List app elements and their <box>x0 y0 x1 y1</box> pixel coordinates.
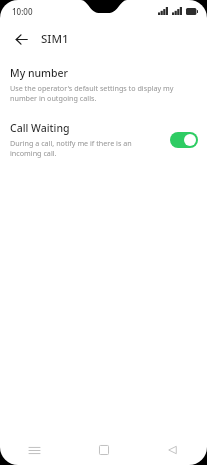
staticText: Use the operator's default settings to d… <box>10 83 198 103</box>
button[interactable]: Home <box>69 435 138 465</box>
staticText: Call Waiting <box>10 121 70 135</box>
staticText: 10:00 <box>12 6 33 17</box>
button[interactable]: Recent apps <box>0 435 69 465</box>
button[interactable]: Back <box>10 28 32 50</box>
button[interactable]: Back <box>138 435 207 465</box>
staticText: SIM1 <box>41 31 69 47</box>
button[interactable]: Call Waiting <box>0 117 207 162</box>
button[interactable]: My number <box>0 62 207 107</box>
button[interactable]: Call Waiting toggle <box>170 132 198 148</box>
staticText: During a call, notify me if there is an … <box>10 138 162 158</box>
staticText: My number <box>10 66 69 80</box>
